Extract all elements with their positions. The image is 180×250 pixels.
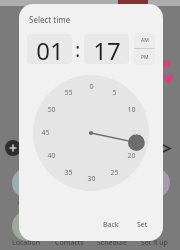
button[interactable]: 17 — [84, 34, 129, 64]
staticText: Schedule — [97, 238, 127, 248]
staticText: Back — [103, 220, 119, 230]
staticText: Contacts — [55, 238, 84, 248]
staticText: 45 — [41, 128, 50, 138]
staticText: 30 — [87, 174, 96, 184]
staticText: Location — [12, 238, 41, 248]
staticText: 20 — [127, 151, 136, 161]
staticText: AM — [141, 37, 149, 44]
staticText: 40 — [47, 151, 56, 161]
staticText: Set it up — [141, 238, 168, 248]
button[interactable]: Location — [10, 237, 43, 249]
staticText: 17 — [93, 34, 121, 64]
button[interactable]: PM — [134, 49, 155, 65]
button[interactable]: Add — [5, 140, 21, 156]
button[interactable]: AM — [134, 33, 155, 48]
staticText: 10 — [127, 105, 136, 115]
button[interactable]: 01 — [27, 34, 72, 64]
button[interactable]: Set it up — [139, 237, 170, 249]
staticText: 01 — [36, 34, 64, 64]
button[interactable]: Back — [98, 217, 124, 233]
staticText: PM — [141, 54, 149, 61]
staticText: : — [75, 36, 81, 63]
staticText: Ga — [18, 199, 26, 207]
button[interactable]: Schedule — [95, 237, 129, 249]
staticText: Set — [137, 220, 148, 230]
button[interactable]: Next — [158, 140, 174, 156]
staticText: 25 — [110, 168, 119, 178]
button[interactable]: Set — [132, 217, 153, 233]
staticText: 55 — [64, 88, 73, 98]
button[interactable]: Contacts — [53, 237, 86, 249]
staticText: 15 — [133, 128, 142, 138]
staticText: 5 — [112, 88, 117, 98]
staticText: Select time — [29, 14, 71, 25]
staticText: 35 — [64, 168, 73, 178]
staticText: 0 — [89, 82, 94, 92]
staticText: 50 — [47, 105, 56, 115]
